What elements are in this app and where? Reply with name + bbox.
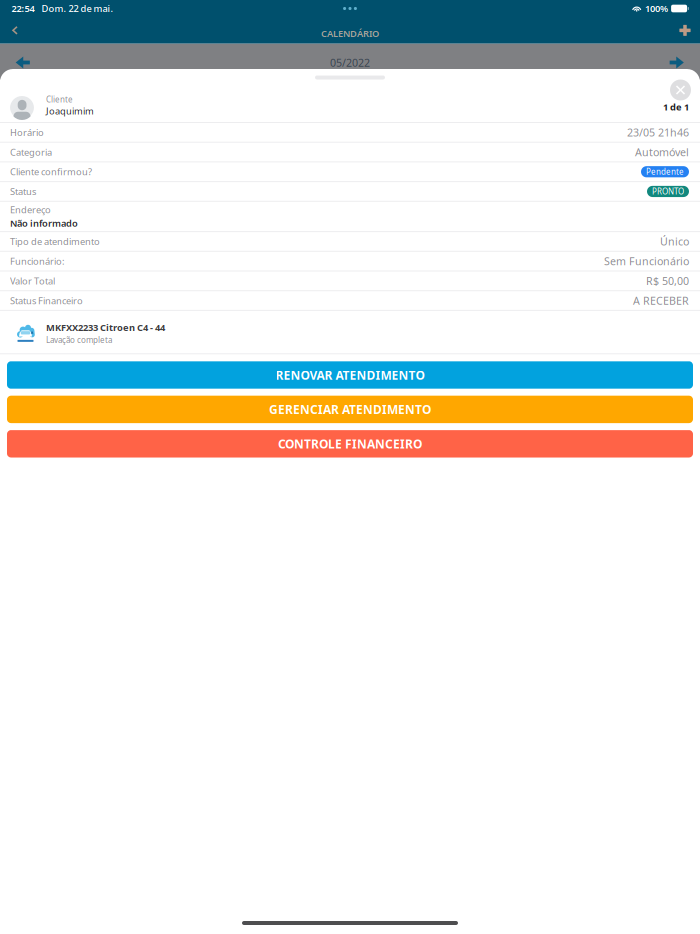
staticText: Tipo de atendimento: [10, 235, 100, 248]
staticText: Pendente: [646, 166, 684, 177]
staticText: PRONTO: [652, 186, 684, 197]
staticText: Cliente confirmou?: [10, 166, 92, 178]
staticText: Status Financeiro: [10, 294, 83, 307]
button[interactable]: Add: [671, 17, 700, 44]
staticText: Automóvel: [635, 145, 689, 159]
button[interactable]: MKFXX2233 Citroen C4 - 44: [0, 311, 700, 353]
staticText: Único: [660, 234, 689, 249]
staticText: A RECEBER: [633, 293, 689, 308]
staticText: 23/05 21h46: [627, 125, 689, 139]
staticText: 22:54: [11, 2, 34, 15]
staticText: Cliente: [46, 94, 73, 105]
button[interactable]: GERENCIAR ATENDIMENTO: [7, 396, 693, 423]
staticText: Horário: [10, 126, 44, 139]
staticText: 1 de 1: [663, 101, 689, 113]
staticText: GERENCIAR ATENDIMENTO: [269, 401, 431, 417]
button[interactable]: CONTROLE FINANCEIRO: [7, 430, 693, 457]
button[interactable]: Back: [0, 17, 29, 44]
staticText: Dom. 22 de mai.: [41, 2, 113, 15]
staticText: Joaquimim: [46, 105, 94, 117]
staticText: MKFXX2233 Citroen C4 - 44: [46, 321, 165, 333]
button[interactable]: RENOVAR ATENDIMENTO: [7, 361, 693, 389]
staticText: Status: [10, 185, 36, 198]
staticText: Valor Total: [10, 275, 55, 287]
button[interactable]: Close: [670, 79, 691, 100]
staticText: Funcionário:: [10, 255, 65, 267]
staticText: CONTROLE FINANCEIRO: [278, 436, 422, 452]
staticText: Endereço: [10, 204, 51, 216]
staticText: Lavação completa: [46, 334, 112, 345]
staticText: 100%: [645, 2, 668, 15]
staticText: Sem Funcionário: [604, 254, 689, 268]
staticText: Não informado: [10, 217, 78, 229]
button[interactable]: Previous month: [0, 51, 46, 74]
staticText: RENOVAR ATENDIMENTO: [275, 367, 424, 383]
button[interactable]: Next month: [654, 51, 700, 74]
staticText: 05/2022: [330, 56, 370, 70]
staticText: R$ 50,00: [646, 274, 689, 288]
staticText: Categoria: [10, 146, 52, 158]
staticText: CALENDÁRIO: [321, 27, 379, 40]
